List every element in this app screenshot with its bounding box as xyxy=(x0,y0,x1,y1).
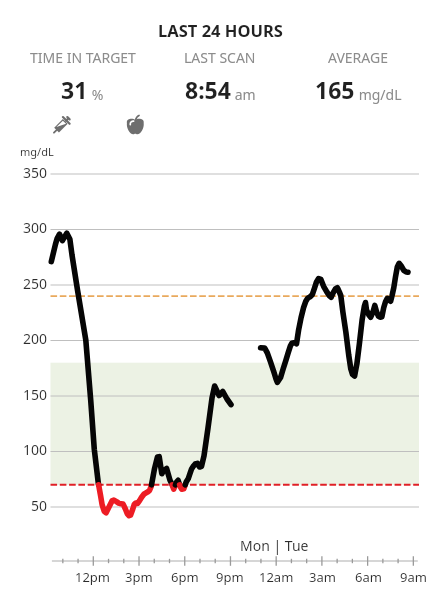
staticText: 9pm xyxy=(216,568,244,586)
button[interactable]: Food xyxy=(125,112,151,138)
staticText: 50 xyxy=(30,496,47,515)
button[interactable]: TIME IN TARGET xyxy=(14,48,151,105)
staticText: 31 xyxy=(61,74,88,105)
staticText: 3am xyxy=(309,568,336,586)
staticText: mg/dL xyxy=(20,144,54,159)
staticText: 350 xyxy=(22,163,47,182)
staticText: 200 xyxy=(22,329,47,348)
staticText: LAST 24 HOURS xyxy=(1,19,439,41)
staticText: mg/dL xyxy=(355,85,402,104)
button[interactable]: Insulin xyxy=(52,112,78,138)
button[interactable]: LAST SCAN xyxy=(151,48,289,105)
staticText: 150 xyxy=(22,385,47,404)
staticText: % xyxy=(88,85,104,104)
staticText: 6pm xyxy=(171,568,199,586)
staticText: 12am xyxy=(259,568,294,586)
staticText: Mon | Tue xyxy=(240,536,309,555)
staticText: 3pm xyxy=(125,568,153,586)
staticText: LAST SCAN xyxy=(184,48,256,67)
staticText: am xyxy=(231,85,256,104)
staticText: 8:54 xyxy=(185,74,231,105)
staticText: TIME IN TARGET xyxy=(30,48,136,67)
staticText: 300 xyxy=(22,218,47,237)
staticText: AVERAGE xyxy=(328,48,388,67)
staticText: 9am xyxy=(400,568,427,586)
staticText: 165 xyxy=(315,74,355,105)
staticText: 250 xyxy=(22,274,47,293)
button[interactable]: AVERAGE xyxy=(289,48,427,105)
staticText: 6am xyxy=(355,568,382,586)
staticText: 12pm xyxy=(75,568,111,586)
staticText: 100 xyxy=(22,440,47,459)
